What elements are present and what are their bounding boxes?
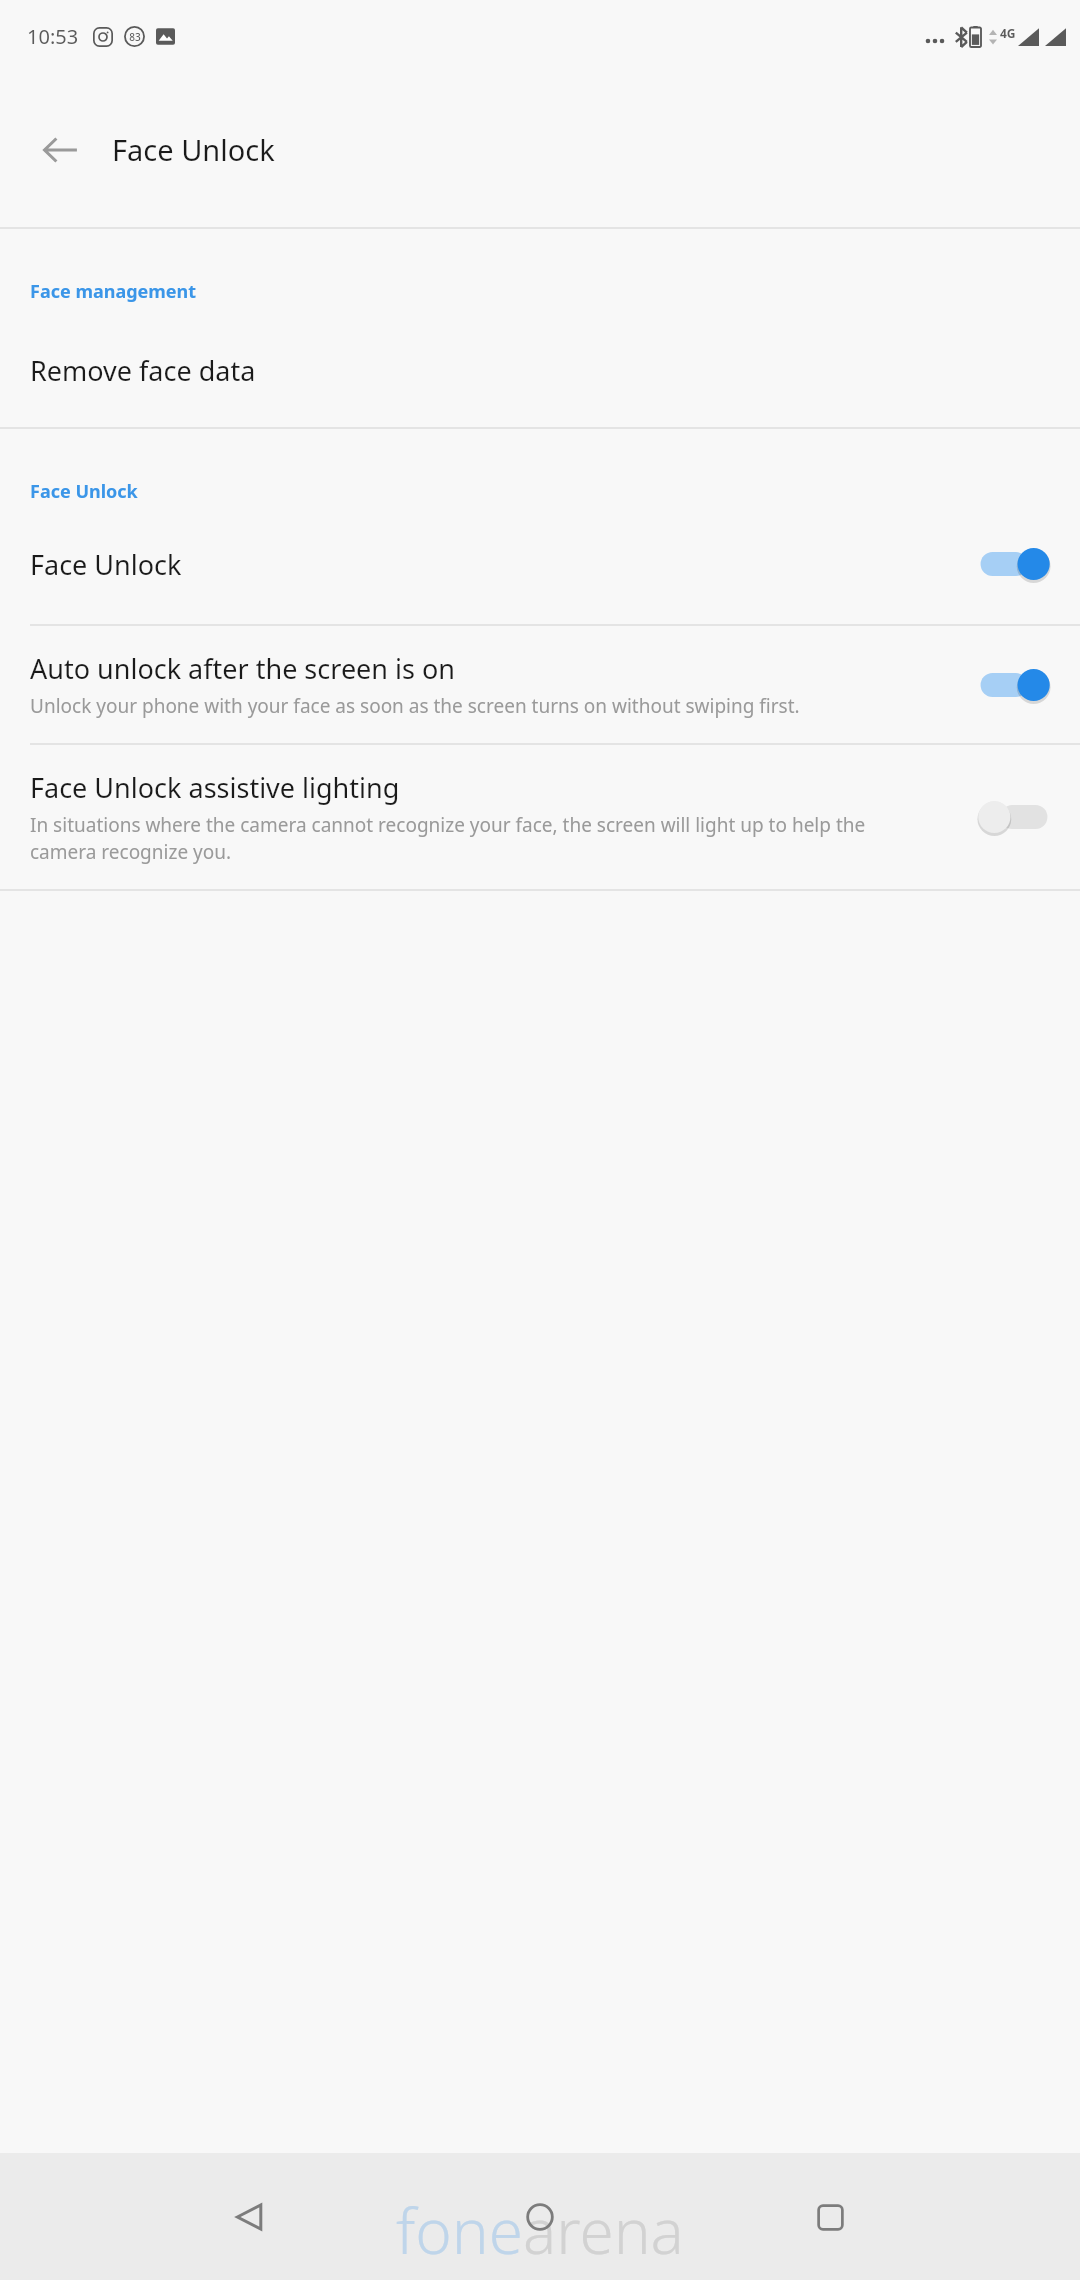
staticText: 4G — [1000, 25, 1016, 41]
staticText: Face Unlock — [30, 546, 182, 583]
staticText: Face Unlock — [30, 479, 138, 504]
staticText: 83 — [129, 30, 141, 44]
staticText: Remove face data — [30, 352, 256, 389]
button[interactable]: Toggle on — [976, 661, 1052, 709]
staticText: Face management — [30, 279, 197, 304]
staticText: 10:53 — [27, 23, 79, 50]
button[interactable]: Recent apps — [790, 2177, 870, 2257]
staticText: Face Unlock — [112, 130, 275, 169]
staticText: Face Unlock assistive lighting — [30, 769, 400, 806]
button[interactable]: Back — [24, 114, 96, 186]
staticText: Unlock your phone with your face as soon… — [30, 693, 800, 719]
button[interactable]: Toggle on — [976, 540, 1052, 588]
button[interactable]: Back — [210, 2177, 290, 2257]
button[interactable]: Home — [500, 2177, 580, 2257]
staticText: arena — [523, 2188, 684, 2272]
button[interactable]: Face Unlock assistive lighting — [0, 745, 1080, 889]
button[interactable]: Remove face data — [0, 304, 1080, 399]
button[interactable]: Auto unlock after the screen is on — [0, 626, 1080, 743]
button[interactable]: Face Unlock — [0, 504, 1080, 624]
staticText: In situations where the camera cannot re… — [30, 812, 936, 865]
staticText: fone — [396, 2188, 523, 2272]
button[interactable]: Toggle off — [976, 793, 1052, 841]
staticText: Auto unlock after the screen is on — [30, 650, 455, 687]
